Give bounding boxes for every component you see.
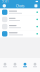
button[interactable]: Tab 1 bbox=[0, 58, 10, 72]
button[interactable]: Tab 2 bbox=[10, 58, 20, 72]
button[interactable] bbox=[0, 30, 40, 37]
button[interactable]: Account bbox=[3, 4, 6, 7]
button[interactable]: New message bbox=[34, 4, 37, 7]
staticText: 9:41 bbox=[2, 0, 9, 3]
button[interactable]: Tab 3 bbox=[20, 58, 30, 72]
button[interactable]: Tab 4 bbox=[30, 58, 40, 72]
button[interactable] bbox=[0, 23, 40, 30]
staticText: Chats bbox=[16, 3, 25, 8]
button[interactable] bbox=[0, 16, 40, 23]
button[interactable] bbox=[0, 9, 40, 16]
